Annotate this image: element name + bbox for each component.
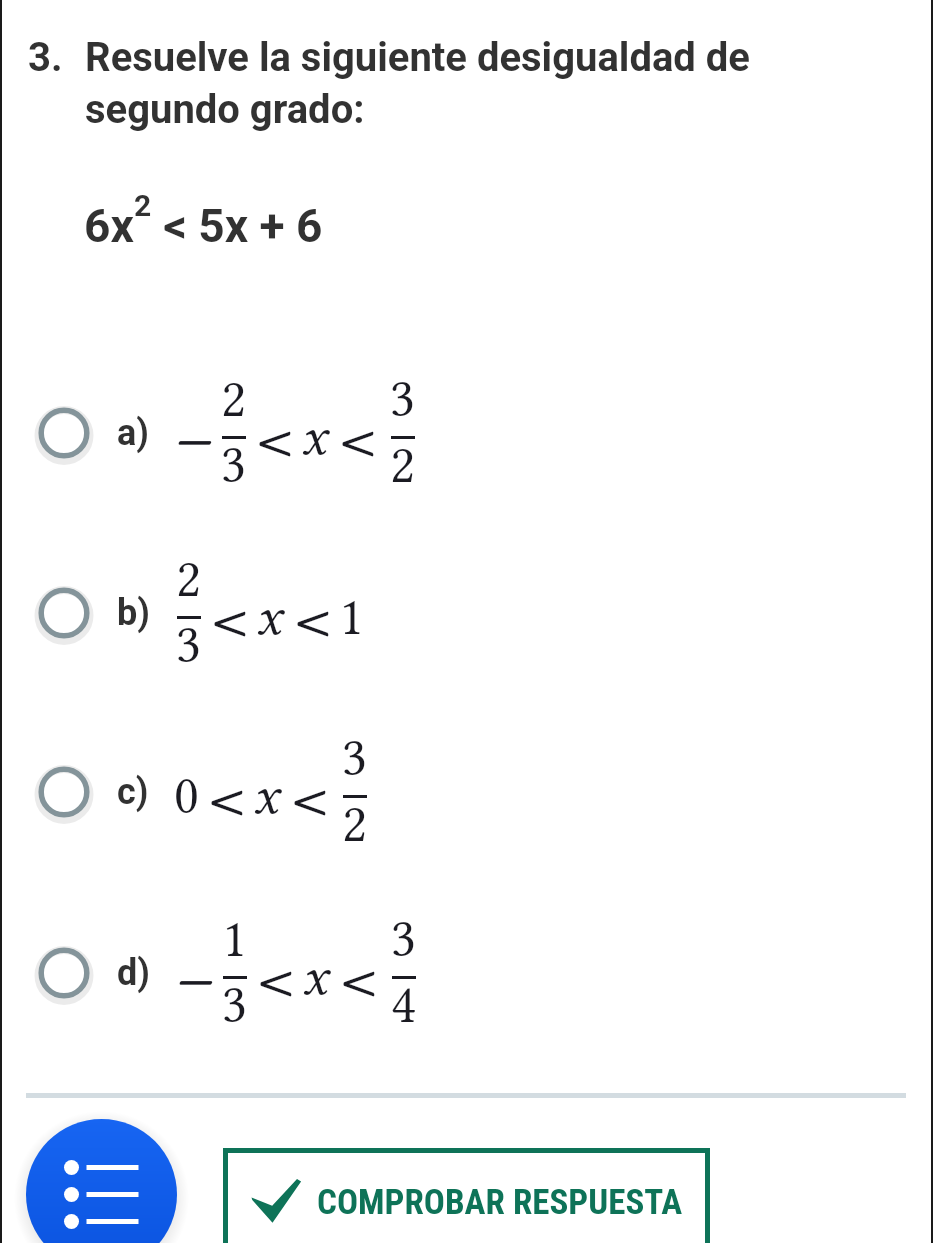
staticText: < (207, 753, 249, 840)
button[interactable]: a) (0, 365, 933, 485)
staticText: 1 (339, 586, 365, 648)
staticText: x (253, 765, 279, 827)
staticText: c) (117, 771, 149, 813)
staticText: 2 (221, 368, 247, 430)
staticText: < (256, 934, 298, 1021)
staticText: x (302, 946, 328, 1008)
staticText: − (175, 934, 217, 1021)
staticText: 2 (176, 548, 202, 610)
staticText: 3 (176, 614, 202, 676)
staticText: 6x (84, 199, 134, 253)
button[interactable]: d) (0, 905, 933, 1025)
button[interactable]: b) (0, 545, 933, 665)
staticText: 3 (221, 434, 247, 496)
staticText: 3. (28, 34, 63, 81)
staticText: 2 (134, 188, 152, 223)
staticText: − (174, 394, 216, 481)
staticText: 2 (342, 793, 368, 855)
staticText: b) (117, 592, 150, 634)
staticText: 3 (390, 368, 416, 430)
button[interactable]: COMPROBAR RESPUESTA (223, 1148, 710, 1243)
staticText: 3 (222, 974, 248, 1036)
staticText: 0 (174, 765, 200, 827)
staticText: < (255, 394, 297, 481)
staticText: 2 (390, 434, 416, 496)
button[interactable]: c) (0, 724, 933, 844)
staticText: d) (117, 952, 150, 994)
staticText: COMPROBAR RESPUESTA (317, 1182, 683, 1223)
staticText: < (290, 753, 332, 840)
staticText: < (338, 394, 380, 481)
staticText: 3 (391, 908, 417, 970)
staticText: 1 (222, 908, 248, 970)
button[interactable]: Lista de preguntas (26, 1119, 177, 1243)
staticText: 4 (391, 974, 417, 1036)
staticText: < (210, 574, 252, 661)
staticText: < 5x + 6 (152, 199, 323, 253)
staticText: 3 (342, 727, 368, 789)
staticText: < (293, 574, 335, 661)
staticText: x (301, 406, 327, 468)
staticText: a) (117, 412, 149, 454)
staticText: x (256, 586, 282, 648)
staticText: < (339, 934, 381, 1021)
staticText: Resuelve la siguiente desigualdad de seg… (85, 34, 785, 133)
